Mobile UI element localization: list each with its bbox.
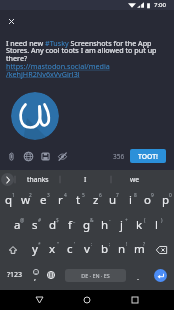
staticText: * (38, 241, 41, 248)
button[interactable]: Backspace (148, 238, 174, 262)
staticText: _ (73, 217, 76, 224)
staticText: l (155, 217, 158, 233)
button[interactable]: f (61, 214, 78, 238)
button[interactable]: p (157, 189, 174, 213)
staticText: 1 (12, 192, 15, 199)
staticText: q (5, 192, 13, 208)
button[interactable]: i (122, 189, 139, 213)
staticText: a (14, 217, 21, 233)
button[interactable]: h (96, 214, 113, 238)
button[interactable]: DE · EN · ES (65, 269, 126, 282)
staticText: I (84, 175, 87, 184)
button[interactable]: r (52, 189, 69, 213)
button[interactable]: x (44, 238, 61, 262)
button[interactable]: TOOT! (130, 149, 166, 163)
staticText: x (49, 241, 56, 257)
button[interactable]: j (113, 214, 130, 238)
button[interactable]: n (113, 238, 130, 262)
button[interactable]: o (139, 189, 156, 213)
button[interactable]: Home (78, 291, 96, 309)
staticText: @ (20, 217, 25, 224)
staticText: n (118, 241, 126, 257)
staticText: i (129, 192, 132, 208)
button[interactable]: we (111, 170, 159, 189)
staticText: DE · EN · ES (81, 272, 110, 279)
button[interactable]: Mark media sensitive (54, 148, 71, 165)
button[interactable]: m (131, 238, 148, 262)
button[interactable]: b (96, 238, 113, 262)
staticText: p (162, 192, 170, 208)
staticText: w (21, 192, 31, 208)
staticText: 4 (64, 192, 67, 199)
button[interactable]: s (26, 214, 43, 238)
staticText: 9 (151, 192, 154, 199)
staticText: TOOT! (138, 152, 158, 161)
staticText: m (134, 241, 145, 257)
button[interactable]: a (9, 214, 26, 238)
button[interactable]: Enter (154, 269, 167, 282)
staticText: . (137, 272, 140, 282)
button[interactable]: Save draft (37, 148, 54, 165)
button[interactable]: q (0, 189, 17, 213)
staticText: ) (161, 217, 163, 224)
button[interactable]: t (70, 189, 87, 213)
button[interactable]: e (35, 189, 52, 213)
button[interactable]: Period (131, 263, 145, 287)
staticText: - (109, 217, 111, 224)
staticText: 0 (169, 192, 172, 199)
staticText: 3 (47, 192, 50, 199)
staticText: " (57, 241, 59, 248)
button[interactable]: l (148, 214, 165, 238)
button[interactable]: k (131, 214, 148, 238)
staticText: ; (109, 241, 111, 248)
button[interactable]: Emoji and comma (28, 263, 43, 287)
button[interactable]: Recent apps (126, 291, 144, 309)
staticText: + (125, 217, 128, 224)
button[interactable]: y (26, 238, 43, 262)
button[interactable]: v (78, 238, 95, 262)
button[interactable]: Shift (0, 238, 26, 262)
staticText: 8 (134, 192, 137, 199)
staticText: s (32, 217, 38, 233)
staticText: u (109, 192, 117, 208)
button[interactable]: d (44, 214, 61, 238)
staticText: ( (144, 217, 146, 224)
button[interactable]: Post privacy (20, 148, 37, 165)
button[interactable]: w (17, 189, 34, 213)
button[interactable]: c (61, 238, 78, 262)
button[interactable]: Close (4, 14, 19, 29)
staticText: y (32, 241, 38, 257)
button[interactable]: u (104, 189, 121, 213)
staticText: # (38, 217, 42, 224)
staticText: : (91, 241, 93, 248)
button[interactable]: ?123 (2, 263, 27, 287)
staticText: r (58, 192, 63, 208)
staticText: , (34, 272, 37, 282)
button[interactable]: Back (30, 291, 48, 309)
button[interactable]: Add media (3, 148, 20, 165)
staticText: z (93, 192, 99, 208)
staticText: $ (56, 217, 59, 224)
button[interactable]: More suggestions (1, 173, 14, 186)
staticText: ' (74, 241, 76, 248)
staticText: 5 (82, 192, 85, 199)
staticText: we (130, 175, 140, 184)
staticText: b (101, 241, 109, 257)
button[interactable]: thanks (15, 170, 60, 189)
staticText: thanks (27, 175, 49, 184)
staticText: k (136, 217, 143, 233)
button[interactable]: g (78, 214, 95, 238)
staticText: 7 (116, 192, 119, 199)
staticText: g (83, 217, 91, 233)
button[interactable]: I (60, 170, 111, 189)
staticText: d (49, 217, 57, 233)
staticText: f (68, 217, 72, 233)
staticText: o (144, 192, 151, 208)
staticText: ? (143, 241, 146, 248)
button[interactable]: z (87, 189, 104, 213)
staticText: t (76, 192, 81, 208)
button[interactable]: Change keyboard language (44, 268, 58, 282)
staticText: v (84, 241, 90, 257)
staticText: I need new #Tusky Screenshots for the Ap… (6, 38, 158, 79)
staticText: j (120, 217, 123, 233)
